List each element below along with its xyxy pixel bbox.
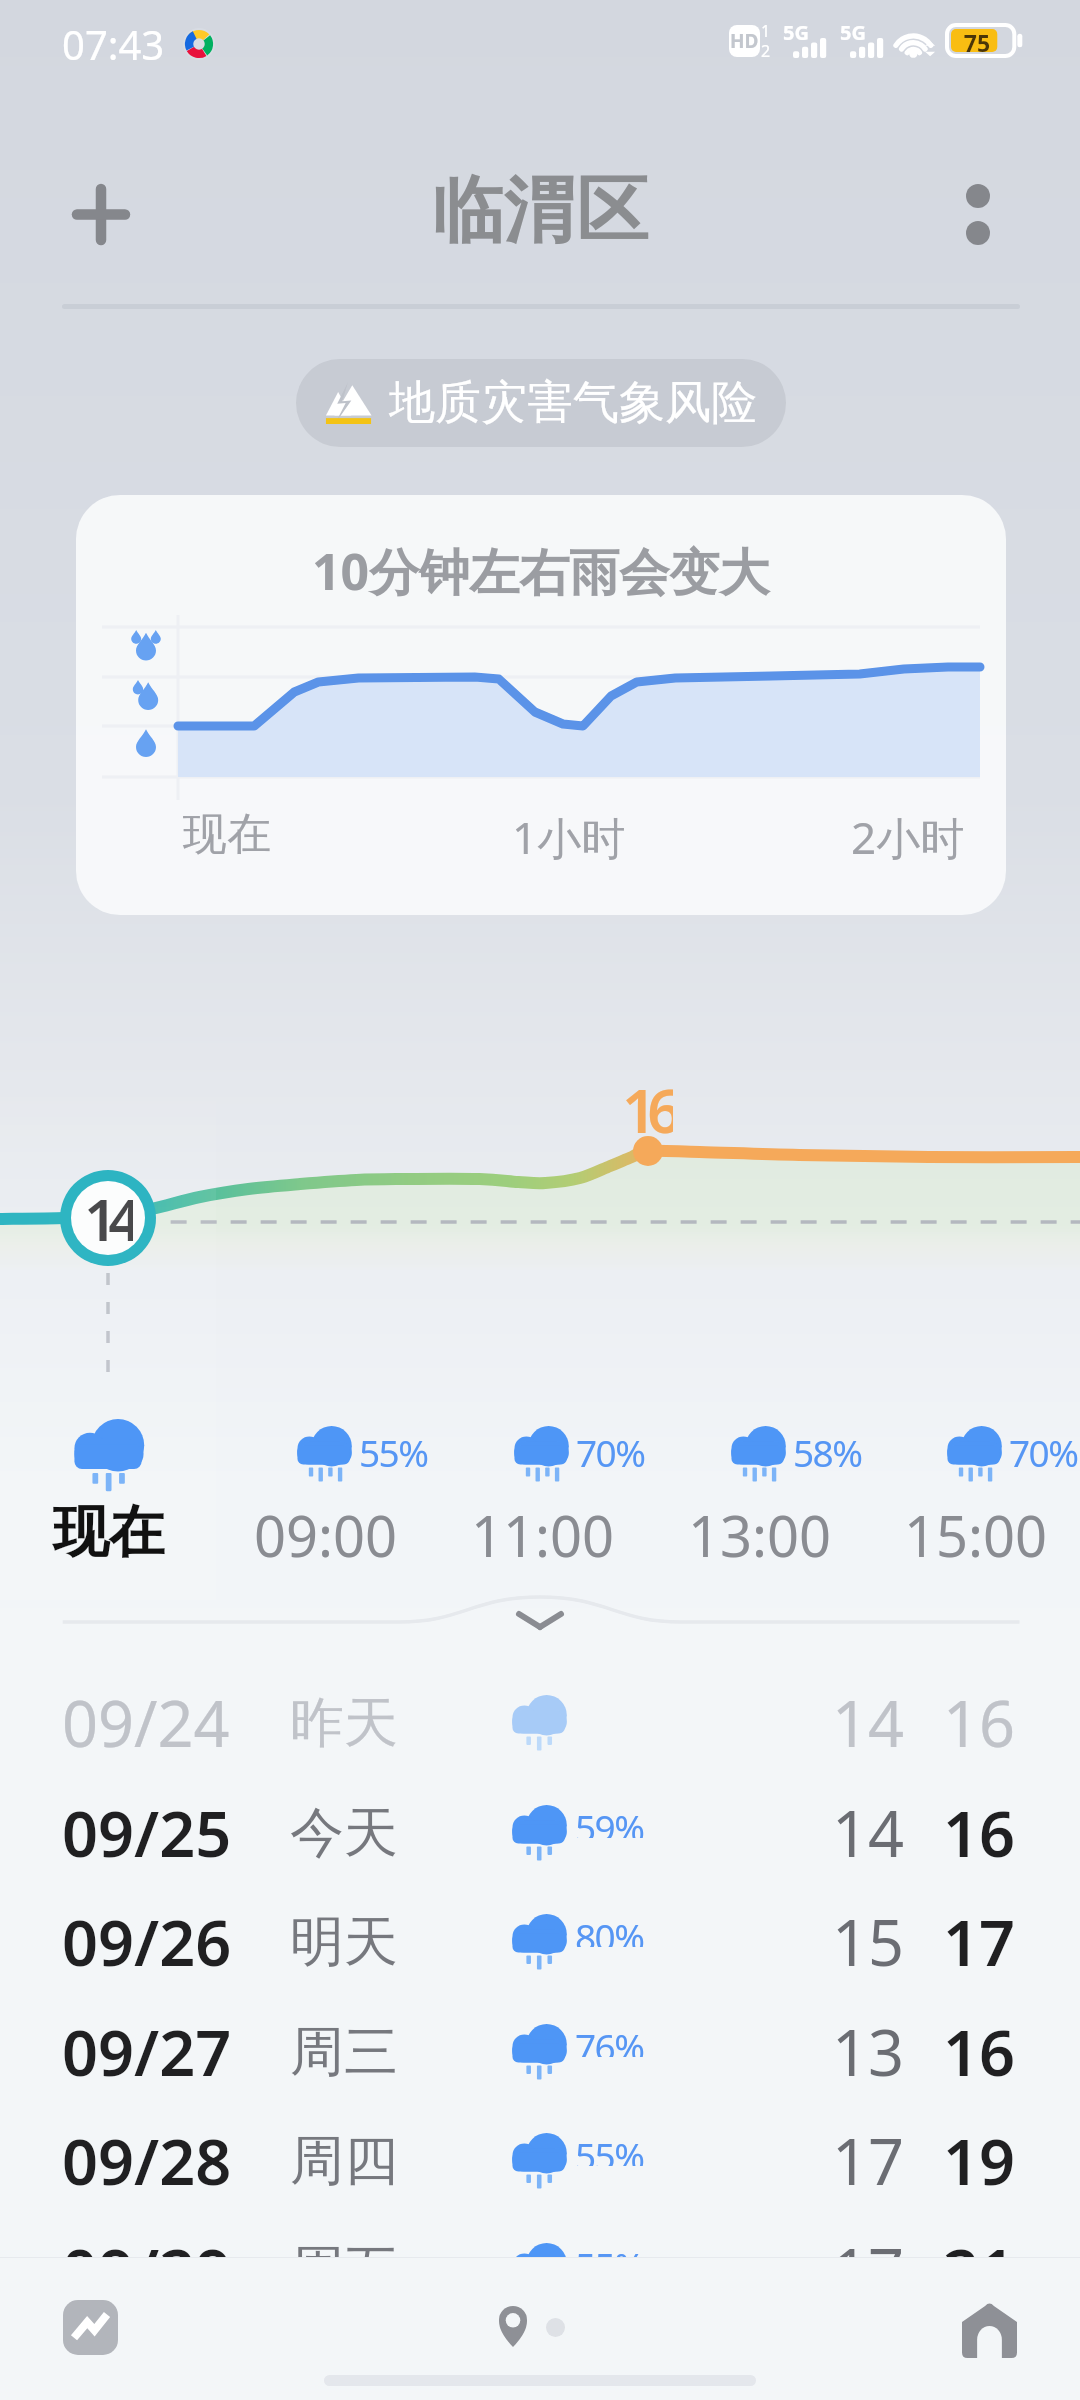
button[interactable]: Home xyxy=(942,2282,1037,2377)
staticText: 今天 xyxy=(290,1799,398,1867)
staticText: 14 xyxy=(832,1680,905,1766)
staticText: 明天 xyxy=(290,1908,398,1976)
button[interactable]: 现在 xyxy=(1,1400,217,1580)
staticText: 现在 xyxy=(53,1497,165,1568)
staticText: 2 xyxy=(761,40,771,62)
staticText: 15 xyxy=(832,1899,905,1985)
staticText: 地质灾害气象风险 xyxy=(389,374,757,432)
staticText: 70% xyxy=(1009,1427,1078,1469)
button[interactable]: 09/27 xyxy=(0,1997,1080,2107)
staticText: 17 xyxy=(832,2228,905,2258)
staticText: 16 xyxy=(943,1680,1016,1766)
staticText: HD xyxy=(730,28,759,54)
staticText: 16 xyxy=(943,1790,1016,1876)
staticText: 75 xyxy=(947,27,1007,58)
staticText: 76% xyxy=(575,2021,644,2057)
staticText: 09/24 xyxy=(62,1680,230,1766)
button[interactable]: Current location xyxy=(482,2286,544,2366)
staticText: 55% xyxy=(359,1427,428,1469)
staticText: 5G xyxy=(783,19,809,46)
button[interactable]: 09/28 xyxy=(0,2106,1080,2216)
staticText: 16 xyxy=(943,2009,1016,2095)
staticText: 14 xyxy=(84,1179,133,1245)
staticText: 14 xyxy=(832,1790,905,1876)
staticText: 周四 xyxy=(290,2127,398,2195)
button[interactable]: 09/26 xyxy=(0,1887,1080,1997)
staticText: 临渭区 xyxy=(432,166,648,257)
staticText: 09/27 xyxy=(62,2009,232,2095)
staticText: 周五 xyxy=(290,2237,398,2258)
staticText: 19 xyxy=(943,2118,1016,2204)
staticText: 09:00 xyxy=(254,1497,398,1573)
staticText: 09/25 xyxy=(62,1790,232,1876)
staticText: 15:00 xyxy=(904,1497,1048,1573)
button[interactable]: More options xyxy=(918,154,1038,274)
staticText: 17 xyxy=(943,1899,1016,1985)
staticText: 2小时 xyxy=(851,807,965,867)
staticText: 59% xyxy=(575,1802,644,1838)
staticText: 58% xyxy=(793,1427,862,1469)
button[interactable]: 15:00 xyxy=(868,1400,1080,1580)
staticText: 07:43 xyxy=(62,17,165,71)
button[interactable]: Weather trends xyxy=(45,2282,135,2372)
button[interactable]: Add city xyxy=(40,154,161,274)
staticText: 5G xyxy=(840,19,866,46)
staticText: 现在 xyxy=(183,807,271,862)
button[interactable]: 09/24 xyxy=(0,1668,1080,1778)
button[interactable]: 09:00 xyxy=(218,1400,434,1580)
staticText: 10分钟左右雨会变大 xyxy=(312,537,770,605)
staticText: 55% xyxy=(575,2130,644,2166)
staticText: 1小时 xyxy=(512,807,626,867)
staticText: 昨天 xyxy=(290,1689,398,1757)
button[interactable]: 10分钟左右雨会变大 xyxy=(76,495,1006,915)
staticText: 13:00 xyxy=(688,1497,832,1573)
button[interactable]: 地质灾害气象风险 xyxy=(296,359,786,447)
staticText: 09/28 xyxy=(62,2118,232,2204)
staticText: 09/26 xyxy=(62,1899,232,1985)
staticText: 09/29 xyxy=(62,2228,232,2258)
button[interactable]: 11:00 xyxy=(435,1400,651,1580)
staticText: 21 xyxy=(943,2228,1016,2258)
staticText: 55% xyxy=(575,2240,644,2258)
button[interactable]: 09/29 xyxy=(0,2216,1080,2258)
staticText: 70% xyxy=(576,1427,645,1469)
staticText: 16 xyxy=(622,1069,673,1135)
staticText: 17 xyxy=(832,2118,905,2204)
button[interactable]: 13:00 xyxy=(652,1400,868,1580)
staticText: 1 xyxy=(761,20,771,42)
staticText: 周三 xyxy=(290,2018,398,2086)
button[interactable]: 09/25 xyxy=(0,1778,1080,1888)
staticText: 13 xyxy=(832,2009,905,2095)
staticText: 80% xyxy=(575,1911,644,1947)
staticText: 11:00 xyxy=(471,1497,615,1573)
